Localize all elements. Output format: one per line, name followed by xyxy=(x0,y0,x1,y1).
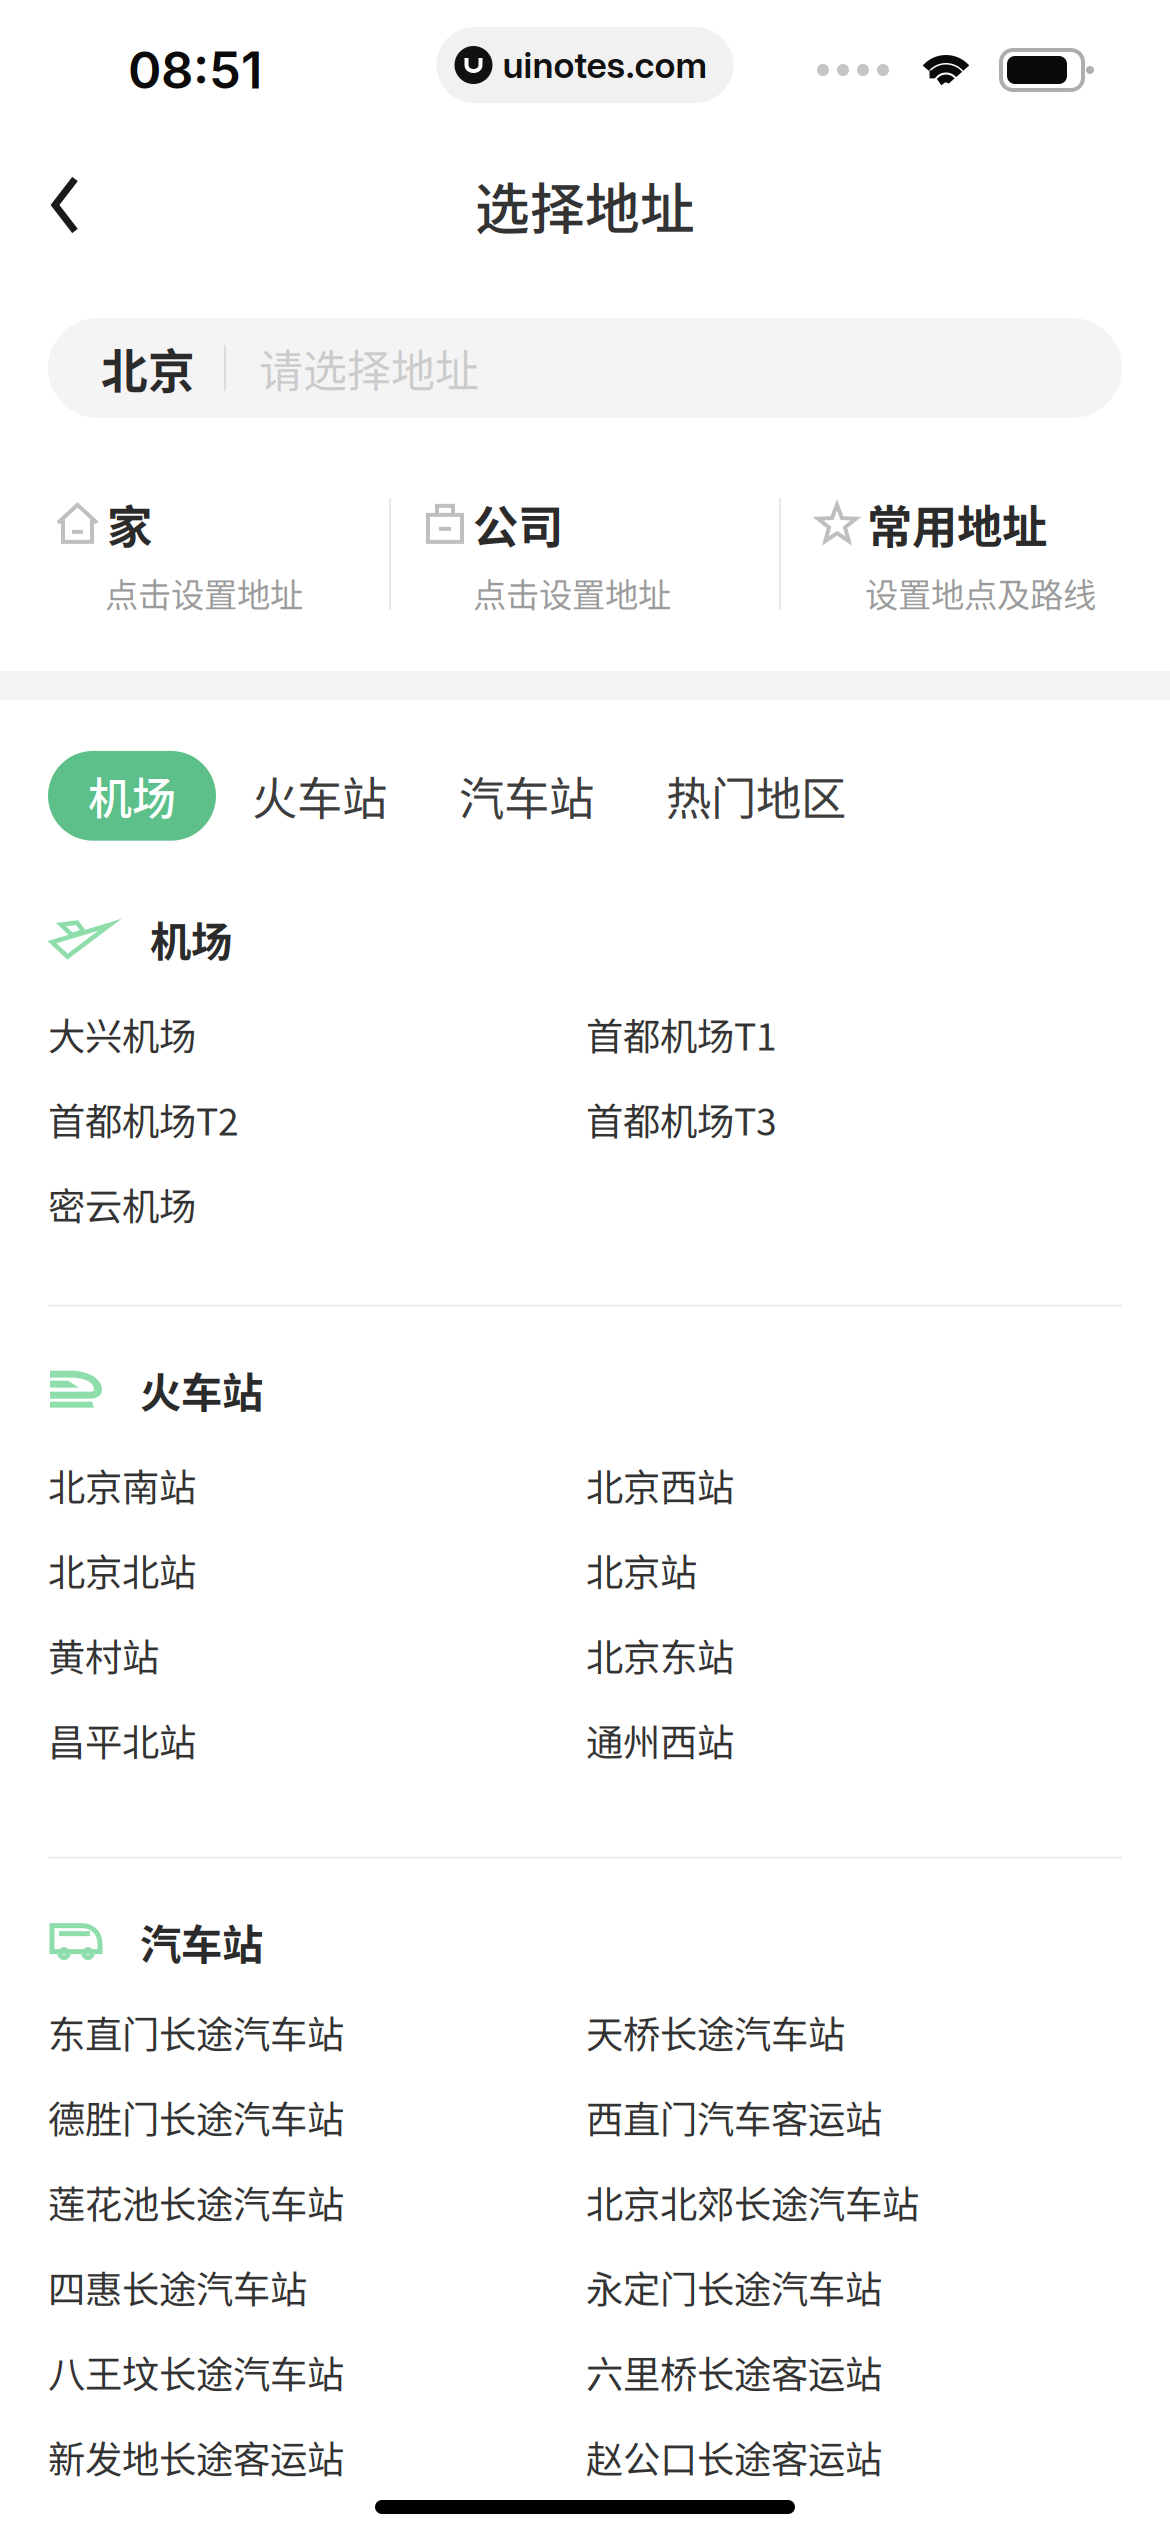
button[interactable]: 北京北郊长途汽车站 xyxy=(586,2160,1124,2245)
staticText: 东直门长途汽车站 xyxy=(48,2005,344,2059)
staticText: 赵公口长途客运站 xyxy=(586,2430,882,2484)
staticText: 北京北站 xyxy=(48,1543,196,1597)
staticText: 通州西站 xyxy=(586,1713,734,1767)
staticText: 北京站 xyxy=(586,1543,697,1597)
button[interactable]: 天桥长途汽车站 xyxy=(586,1990,1124,2075)
button[interactable]: 四惠长途汽车站 xyxy=(48,2245,586,2330)
staticText: 点击设置地址 xyxy=(473,569,671,617)
staticText: 西直门汽车客运站 xyxy=(586,2090,882,2144)
button[interactable]: 首都机场T3 xyxy=(586,1077,1124,1162)
staticText: 火车站 xyxy=(252,763,387,829)
button[interactable]: 北京 xyxy=(0,318,1170,418)
staticText: 永定门长途汽车站 xyxy=(586,2260,882,2314)
button[interactable]: 六里桥长途客运站 xyxy=(586,2330,1124,2415)
staticText: 首都机场T3 xyxy=(586,1092,777,1146)
staticText: 汽车站 xyxy=(459,763,594,829)
staticText: 密云机场 xyxy=(48,1177,196,1231)
button[interactable]: 北京站 xyxy=(586,1528,1124,1613)
staticText: 公司 xyxy=(473,491,563,557)
staticText: 热门地区 xyxy=(666,763,846,829)
staticText: 机场 xyxy=(88,764,176,828)
staticText: 大兴机场 xyxy=(48,1007,196,1061)
button[interactable]: 热门地区 xyxy=(630,750,882,842)
button[interactable]: 赵公口长途客运站 xyxy=(586,2415,1124,2500)
button[interactable]: 返回 xyxy=(0,152,128,258)
button[interactable]: 八王坟长途汽车站 xyxy=(48,2330,586,2415)
staticText: 北京北郊长途汽车站 xyxy=(586,2175,919,2229)
button[interactable]: 首都机场T1 xyxy=(586,992,1124,1077)
button[interactable]: 西直门汽车客运站 xyxy=(586,2075,1124,2160)
staticText: 设置地点及路线 xyxy=(865,569,1096,617)
staticText: 莲花池长途汽车站 xyxy=(48,2175,344,2229)
button[interactable]: 东直门长途汽车站 xyxy=(48,1990,586,2075)
staticText: 常用地址 xyxy=(867,491,1047,557)
staticText: 昌平北站 xyxy=(48,1713,196,1767)
staticText: 新发地长途客运站 xyxy=(48,2430,344,2484)
staticText: 四惠长途汽车站 xyxy=(48,2260,307,2314)
button[interactable]: 北京南站 xyxy=(48,1443,586,1528)
button[interactable]: 莲花池长途汽车站 xyxy=(48,2160,586,2245)
staticText: 八王坟长途汽车站 xyxy=(48,2345,344,2399)
staticText: 机场 xyxy=(150,909,232,969)
button[interactable]: 公司 xyxy=(391,494,779,614)
staticText: 首都机场T2 xyxy=(48,1092,239,1146)
staticText: 家 xyxy=(107,491,152,557)
staticText: 点击设置地址 xyxy=(105,569,303,617)
staticText: 北京东站 xyxy=(586,1628,734,1682)
staticText: 汽车站 xyxy=(140,1912,263,1972)
button[interactable]: 家 xyxy=(1,494,389,614)
button[interactable]: 新发地长途客运站 xyxy=(48,2415,586,2500)
staticText: 首都机场T1 xyxy=(586,1007,777,1061)
button[interactable]: 德胜门长途汽车站 xyxy=(48,2075,586,2160)
staticText: uinotes.com xyxy=(502,43,707,87)
button[interactable]: 机场 xyxy=(48,751,216,841)
button[interactable]: 北京东站 xyxy=(586,1613,1124,1698)
staticText: 黄村站 xyxy=(48,1628,159,1682)
button[interactable]: 北京北站 xyxy=(48,1528,586,1613)
button[interactable]: 北京西站 xyxy=(586,1443,1124,1528)
button[interactable]: 汽车站 xyxy=(423,750,630,842)
button[interactable]: 永定门长途汽车站 xyxy=(586,2245,1124,2330)
button[interactable]: 常用地址 xyxy=(781,494,1169,614)
button[interactable]: 昌平北站 xyxy=(48,1698,586,1783)
button[interactable]: 黄村站 xyxy=(48,1613,586,1698)
button[interactable]: 首都机场T2 xyxy=(48,1077,586,1162)
staticText: 六里桥长途客运站 xyxy=(586,2345,882,2399)
staticText: 北京 xyxy=(101,334,195,402)
staticText: 北京南站 xyxy=(48,1458,196,1512)
staticText: 德胜门长途汽车站 xyxy=(48,2090,344,2144)
button[interactable]: 火车站 xyxy=(216,750,423,842)
staticText: 北京西站 xyxy=(586,1458,734,1512)
staticText: 天桥长途汽车站 xyxy=(586,2005,845,2059)
button[interactable]: 密云机场 xyxy=(48,1162,586,1247)
staticText: 选择地址 xyxy=(475,165,695,245)
staticText: 请选择地址 xyxy=(259,336,479,400)
staticText: 08:51 xyxy=(128,39,262,101)
button[interactable]: 大兴机场 xyxy=(48,992,586,1077)
staticText: 火车站 xyxy=(140,1360,263,1420)
button[interactable]: 通州西站 xyxy=(586,1698,1124,1783)
